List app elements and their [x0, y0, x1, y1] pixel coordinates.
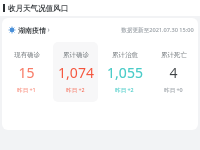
staticText: 4	[169, 63, 178, 82]
staticText: 数据更新至2021.07.30 15:00	[121, 26, 194, 34]
staticText: 累计死亡	[161, 51, 187, 59]
staticText: 15	[18, 63, 35, 82]
staticText: 昨日 +0	[164, 86, 183, 93]
staticText: 昨日 +2	[115, 86, 134, 93]
staticText: ›	[47, 25, 50, 35]
button[interactable]: 疫情图标	[6, 23, 52, 37]
button[interactable]: 累计治愈	[102, 42, 147, 102]
staticText: 累计治愈	[112, 51, 138, 59]
button[interactable]: 现有确诊	[4, 42, 49, 102]
button[interactable]: 累计确诊	[53, 42, 98, 102]
button[interactable]: 累计死亡	[151, 42, 196, 102]
staticText: 1,055	[107, 63, 143, 82]
staticText: 现有确诊	[14, 51, 40, 59]
staticText: 昨日 +2	[66, 86, 85, 93]
other: 疫情图标	[8, 26, 16, 34]
staticText: 收月天气况值风口	[8, 4, 68, 13]
staticText: 昨日 +1	[17, 86, 36, 93]
staticText: 1,074	[58, 63, 94, 82]
button[interactable]: 收月天气况值风口	[0, 0, 200, 16]
staticText: 湖南疫情	[18, 26, 46, 35]
staticText: 累计确诊	[63, 51, 89, 59]
